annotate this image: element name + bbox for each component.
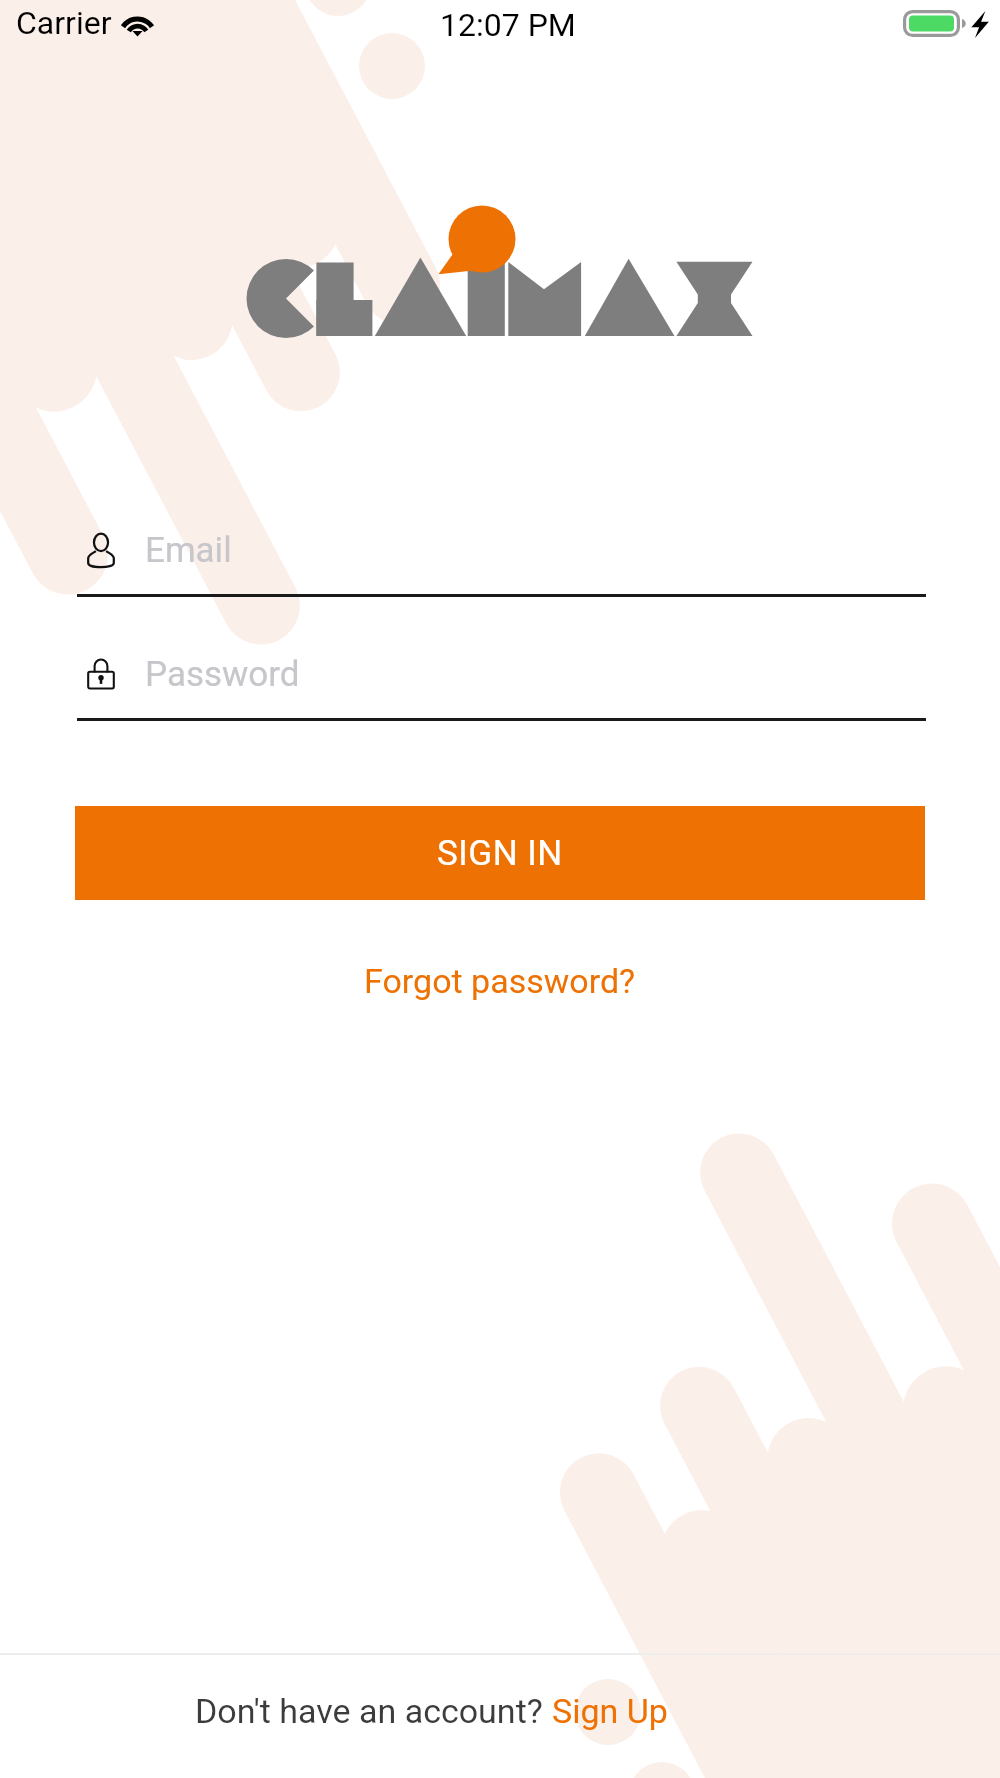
other: Password bbox=[85, 655, 117, 693]
staticText: SIGN IN bbox=[437, 833, 563, 874]
staticText: Don't have an account? bbox=[195, 1691, 552, 1731]
other: Email bbox=[85, 531, 117, 569]
staticText: Forgot password? bbox=[364, 961, 636, 1001]
staticText: 12:07 PM bbox=[440, 6, 576, 44]
staticText: Email bbox=[145, 530, 232, 571]
button[interactable]: Sign Up bbox=[552, 1691, 668, 1731]
button[interactable]: Forgot password? bbox=[350, 951, 650, 1011]
staticText: Sign Up bbox=[552, 1691, 668, 1731]
button[interactable]: SIGN IN bbox=[75, 806, 925, 900]
staticText: Password bbox=[145, 654, 300, 695]
staticText: Carrier bbox=[16, 4, 112, 42]
button[interactable]: Email bbox=[77, 521, 926, 597]
button[interactable]: Password bbox=[77, 645, 926, 721]
